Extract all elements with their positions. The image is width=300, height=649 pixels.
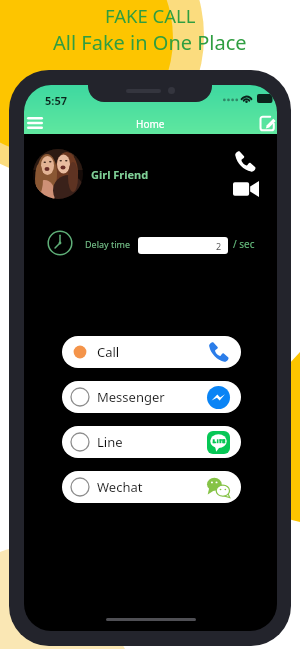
staticText: Delay time [85,238,131,250]
staticText: Call [97,343,120,361]
staticText: Girl Friend [91,167,149,182]
staticText: 5:57 [45,93,67,108]
button[interactable]: Messenger [62,381,241,413]
staticText: / sec [233,237,255,251]
button[interactable]: Wechat [62,471,241,503]
button[interactable]: 2 [138,237,228,254]
button[interactable]: Compose [255,111,277,133]
staticText: 2 [216,240,222,252]
button[interactable]: Menu [24,110,48,134]
staticText: Messenger [97,388,165,406]
button[interactable]: Video call [231,177,260,200]
button[interactable]: Call [231,148,258,175]
staticText: All Fake in One Place [53,29,247,56]
staticText: Line [97,433,123,451]
staticText: Wechat [97,478,143,496]
button[interactable]: Line [62,426,241,458]
button[interactable]: Call [62,336,241,368]
staticText: FAKE CALL [105,3,196,28]
staticText: Home [136,117,165,131]
